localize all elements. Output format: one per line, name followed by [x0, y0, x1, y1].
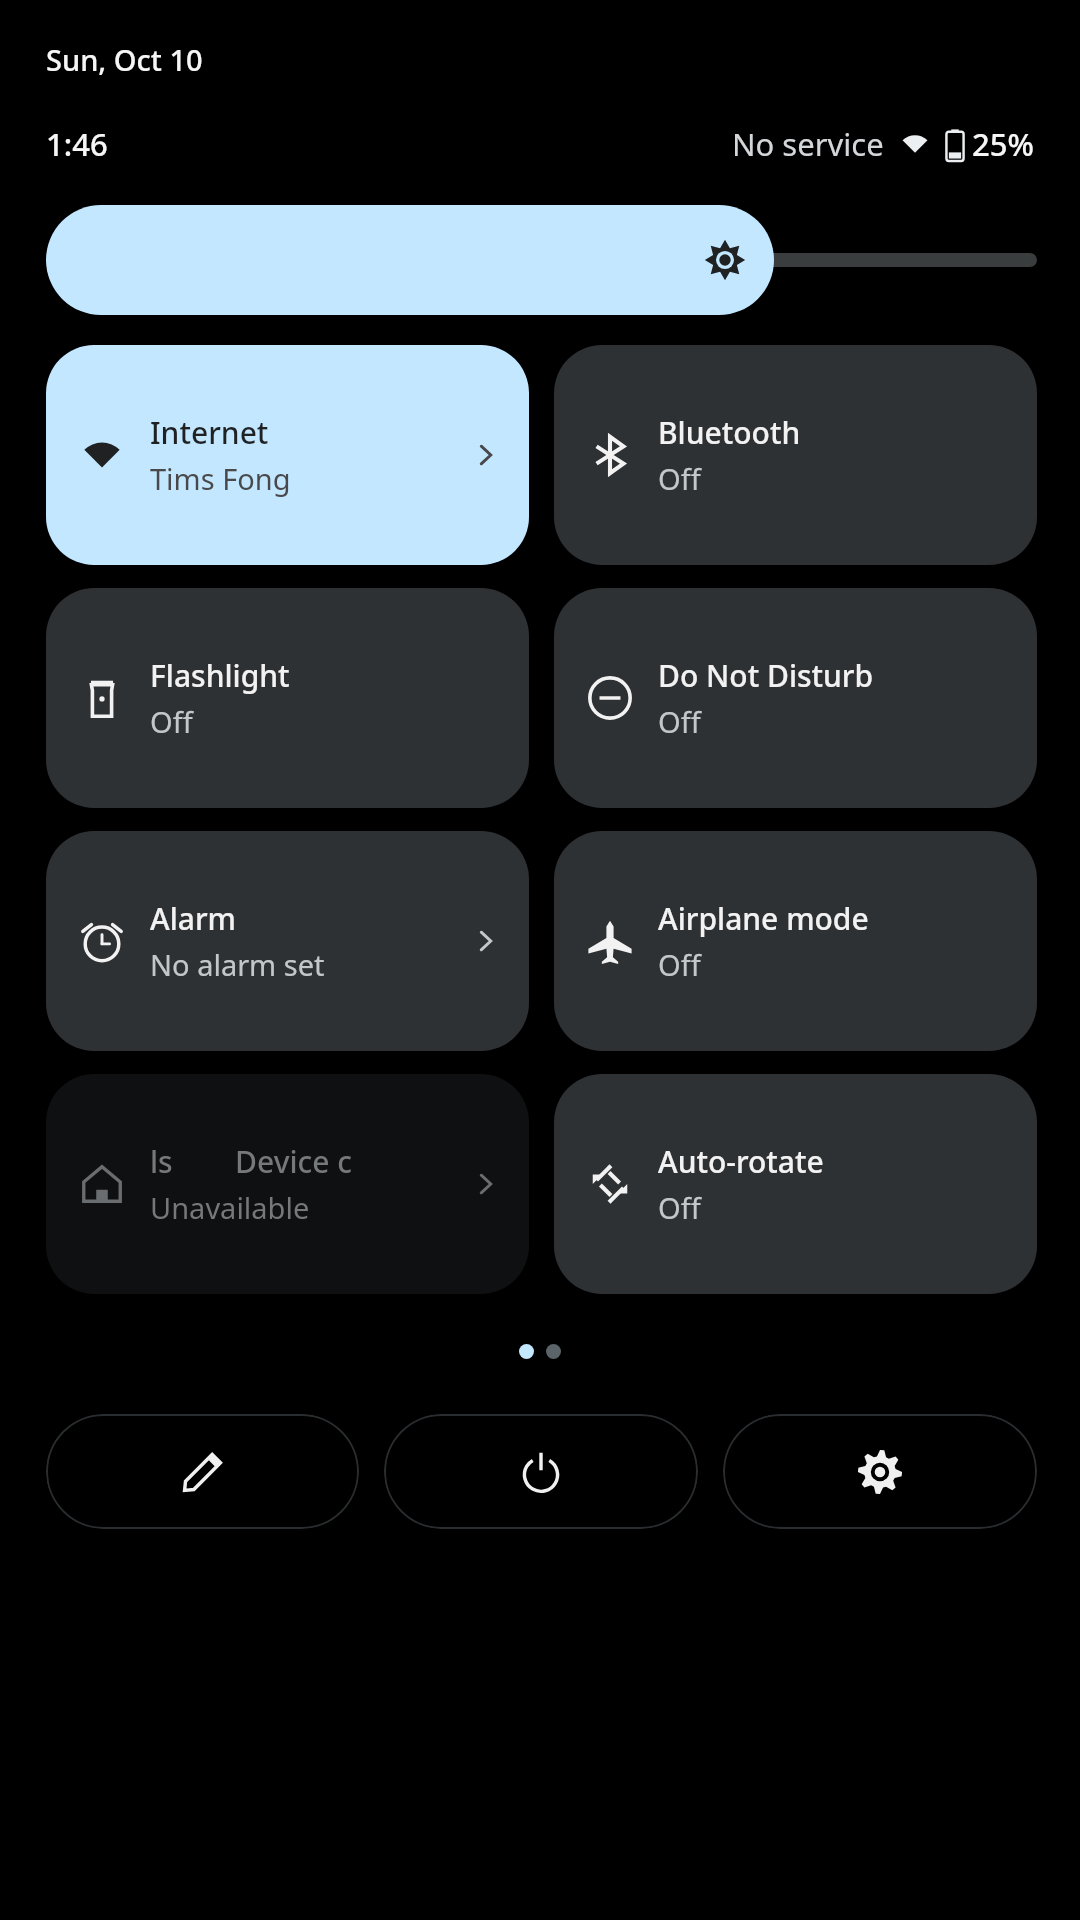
button[interactable]: Settings [723, 1414, 1037, 1529]
staticText: Internet [150, 412, 269, 453]
button[interactable]: Auto-rotate [554, 1074, 1037, 1294]
button[interactable]: Bluetooth [554, 345, 1037, 565]
button[interactable]: ls Device c [46, 1074, 529, 1294]
button[interactable]: Flashlight [46, 588, 529, 808]
staticText: No alarm set [150, 945, 325, 984]
staticText: Do Not Disturb [658, 655, 874, 696]
button[interactable]: Edit tiles [46, 1414, 359, 1529]
staticText: Off [658, 459, 701, 498]
staticText: Off [658, 945, 701, 984]
staticText: Auto-rotate [658, 1141, 824, 1182]
staticText: Bluetooth [658, 412, 801, 453]
staticText: Off [658, 702, 701, 741]
staticText: Off [150, 702, 193, 741]
button[interactable]: Airplane mode [554, 831, 1037, 1051]
staticText: Sun, Oct 10 [46, 40, 203, 79]
button[interactable]: Alarm [46, 831, 529, 1051]
button[interactable]: Power [384, 1414, 698, 1529]
staticText: 1:46 [46, 123, 108, 165]
staticText: Airplane mode [658, 898, 869, 939]
button[interactable]: Internet [46, 345, 529, 565]
staticText: Off [658, 1188, 701, 1227]
staticText: Unavailable [150, 1188, 310, 1227]
button[interactable] [46, 205, 1037, 315]
staticText: Flashlight [150, 655, 290, 696]
staticText: No service [732, 123, 884, 165]
staticText: Tims Fong [150, 459, 291, 498]
staticText: 25% [972, 123, 1034, 165]
staticText: Alarm [150, 898, 237, 939]
button[interactable]: Do Not Disturb [554, 588, 1037, 808]
staticText: ls Device c [150, 1141, 353, 1182]
